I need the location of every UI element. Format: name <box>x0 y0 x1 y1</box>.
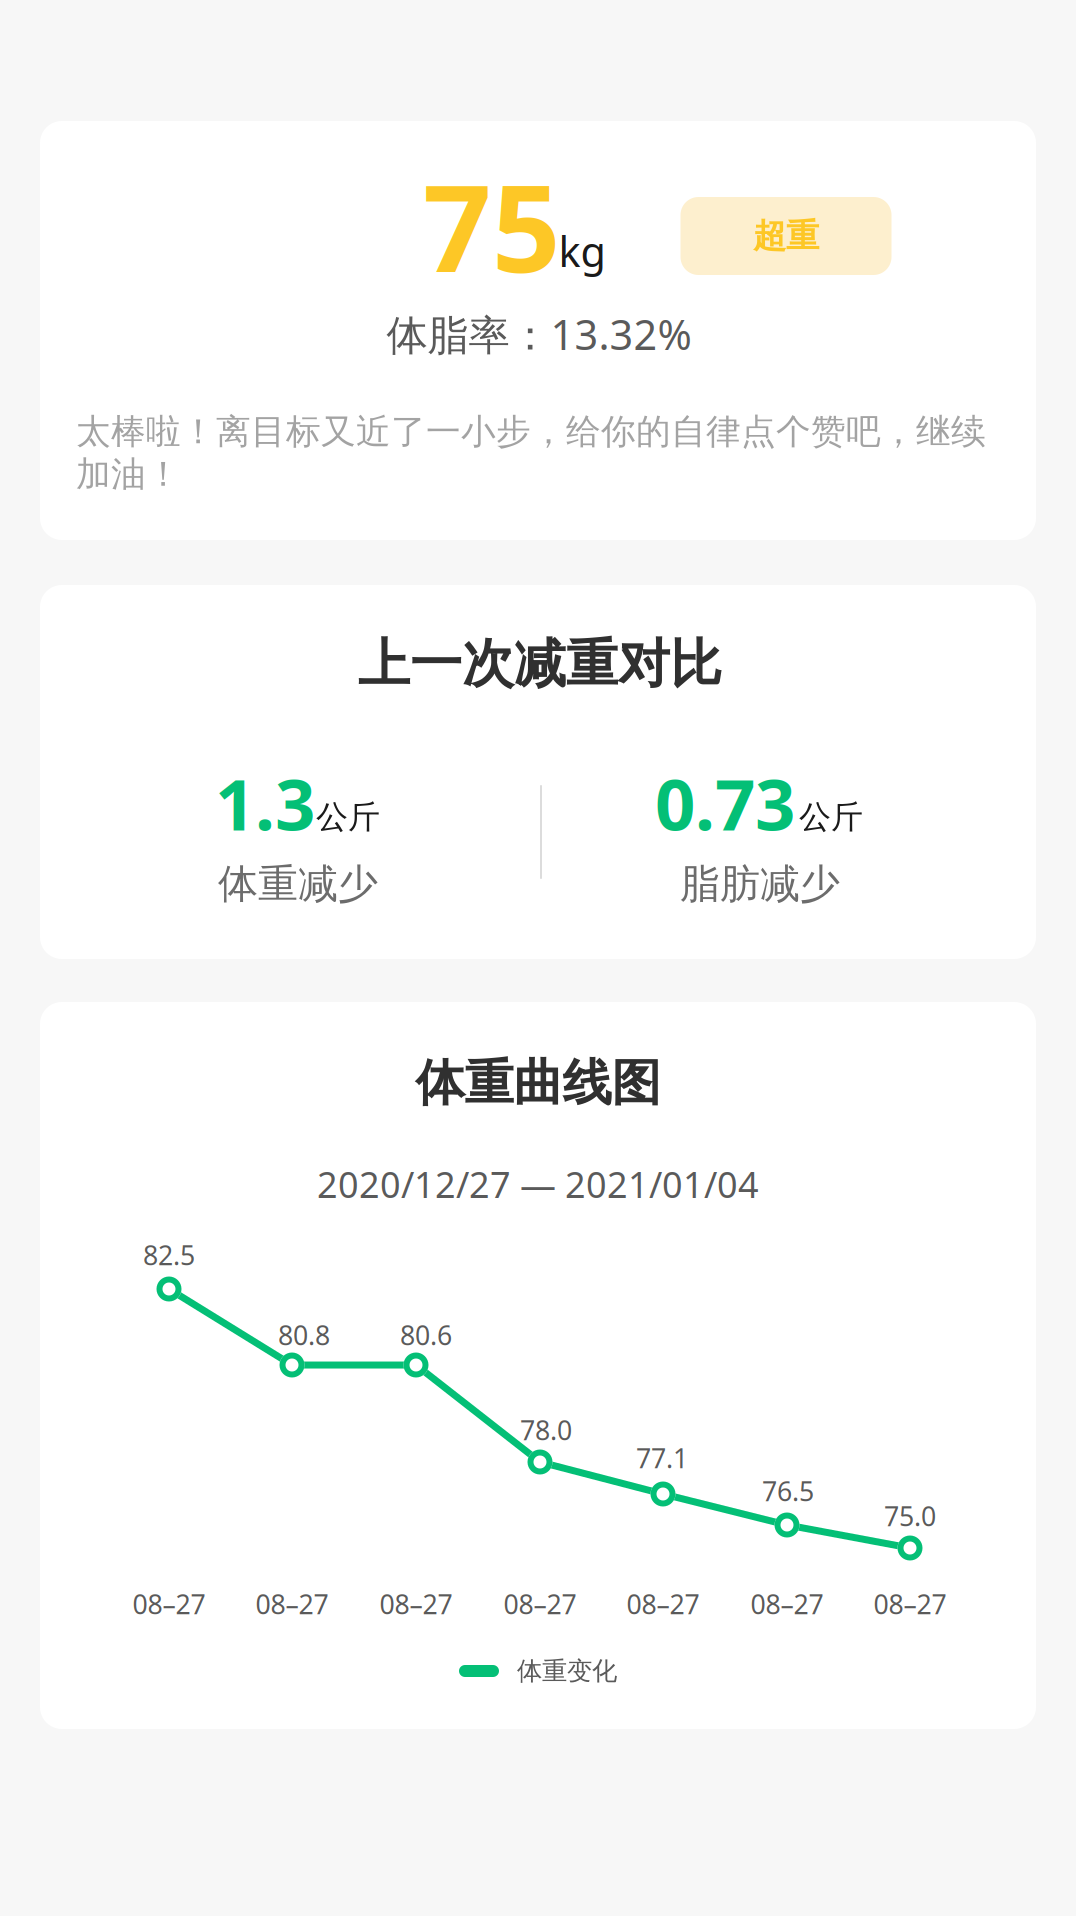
staticText: 1.3 <box>215 756 315 850</box>
staticText: 公斤 <box>799 797 863 837</box>
staticText: 08–27 <box>503 1586 576 1622</box>
staticText: 75.0 <box>884 1498 936 1534</box>
staticText: 体重减少 <box>218 859 378 908</box>
staticText: 08–27 <box>750 1586 823 1622</box>
button[interactable]: 超重 <box>680 197 891 275</box>
staticText: 公斤 <box>316 797 380 837</box>
staticText: 75 <box>423 146 561 306</box>
staticText: kg <box>558 224 605 278</box>
staticText: 08–27 <box>132 1586 205 1622</box>
staticText: 超重 <box>753 215 819 256</box>
staticText: 80.8 <box>278 1317 330 1353</box>
staticText: 0.73 <box>655 756 795 850</box>
staticText: 08–27 <box>873 1586 946 1622</box>
staticText: 77.1 <box>636 1440 688 1476</box>
staticText: 80.6 <box>400 1317 452 1353</box>
staticText: 76.5 <box>762 1473 814 1509</box>
staticText: 08–27 <box>626 1586 699 1622</box>
staticText: 脂肪减少 <box>680 859 840 908</box>
staticText: 太棒啦！离目标又近了一小步，给你的自律点个赞吧，继续加油！ <box>76 410 986 496</box>
staticText: 上一次减重对比 <box>358 632 722 696</box>
staticText: 08–27 <box>379 1586 452 1622</box>
staticText: 82.5 <box>143 1237 195 1273</box>
staticText: 体脂率：13.32% <box>386 307 691 361</box>
staticText: 体重变化 <box>517 1655 617 1686</box>
staticText: 体重曲线图 <box>415 1053 660 1113</box>
staticText: 78.0 <box>520 1412 572 1448</box>
staticText: 2020/12/27 — 2021/01/04 <box>317 1160 759 1208</box>
staticText: 08–27 <box>255 1586 328 1622</box>
